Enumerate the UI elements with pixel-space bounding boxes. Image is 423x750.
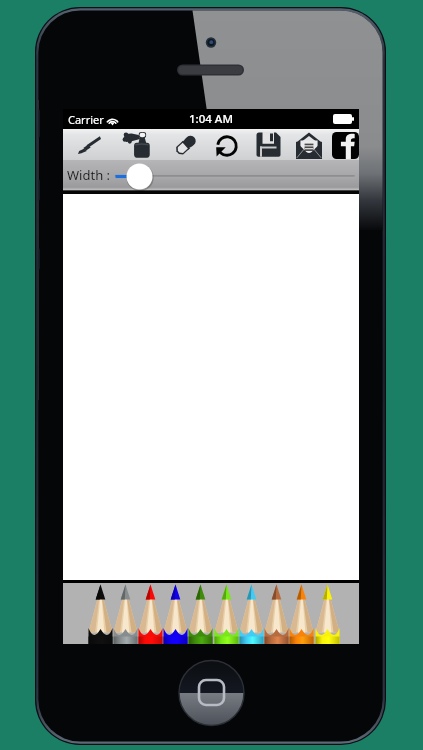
button[interactable]: Colour	[214, 583, 239, 644]
button[interactable]: Width slider	[63, 160, 359, 194]
button[interactable]: Colour	[113, 583, 138, 644]
button[interactable]: Save	[248, 129, 288, 160]
button[interactable]: Colour	[163, 583, 188, 644]
button[interactable]: Eraser	[166, 129, 206, 160]
button[interactable]: Colour	[315, 583, 340, 644]
button[interactable]: Colour	[264, 583, 289, 644]
staticText: Carrier	[68, 112, 104, 127]
button[interactable]: Colour	[88, 583, 113, 644]
button[interactable]: Colour	[188, 583, 213, 644]
button[interactable]: Colour	[138, 583, 163, 644]
button[interactable]: Fill	[116, 129, 156, 160]
staticText: 1:04 AM	[189, 111, 233, 127]
staticText: Width :	[67, 166, 111, 184]
button[interactable]: Colour	[239, 583, 264, 644]
button[interactable]: Brush	[69, 129, 109, 160]
button[interactable]: Email	[289, 129, 329, 160]
button[interactable]: Undo	[207, 129, 247, 160]
button[interactable]: Facebook	[325, 129, 365, 160]
button[interactable]: Colour	[289, 583, 314, 644]
